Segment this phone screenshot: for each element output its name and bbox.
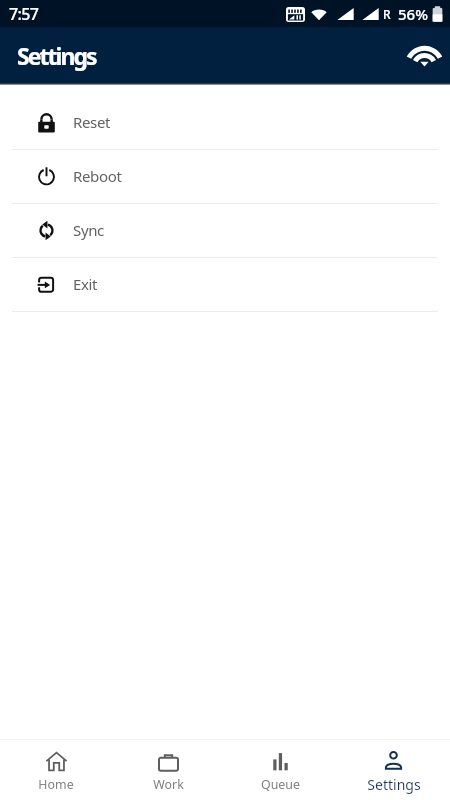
staticText: 56%: [398, 4, 428, 24]
button[interactable]: Reset: [0, 96, 450, 149]
staticText: Reset: [73, 112, 111, 132]
button[interactable]: Reboot: [0, 150, 450, 203]
staticText: Exit: [73, 274, 98, 294]
staticText: 7:57: [9, 3, 39, 25]
button[interactable]: Sync: [0, 204, 450, 257]
button[interactable]: Settings: [337, 744, 450, 800]
staticText: Work: [153, 776, 184, 793]
button[interactable]: Exit: [0, 258, 450, 311]
button[interactable]: Work: [112, 744, 224, 800]
button[interactable]: Queue: [224, 744, 337, 800]
staticText: Queue: [261, 776, 300, 793]
button[interactable]: Wifi status: [401, 32, 447, 78]
staticText: Sync: [73, 220, 104, 240]
staticText: Settings: [17, 40, 96, 71]
button[interactable]: Home: [0, 744, 112, 800]
staticText: Reboot: [73, 166, 122, 186]
staticText: Settings: [367, 775, 421, 794]
staticText: Home: [38, 776, 74, 793]
staticText: R: [383, 6, 391, 22]
